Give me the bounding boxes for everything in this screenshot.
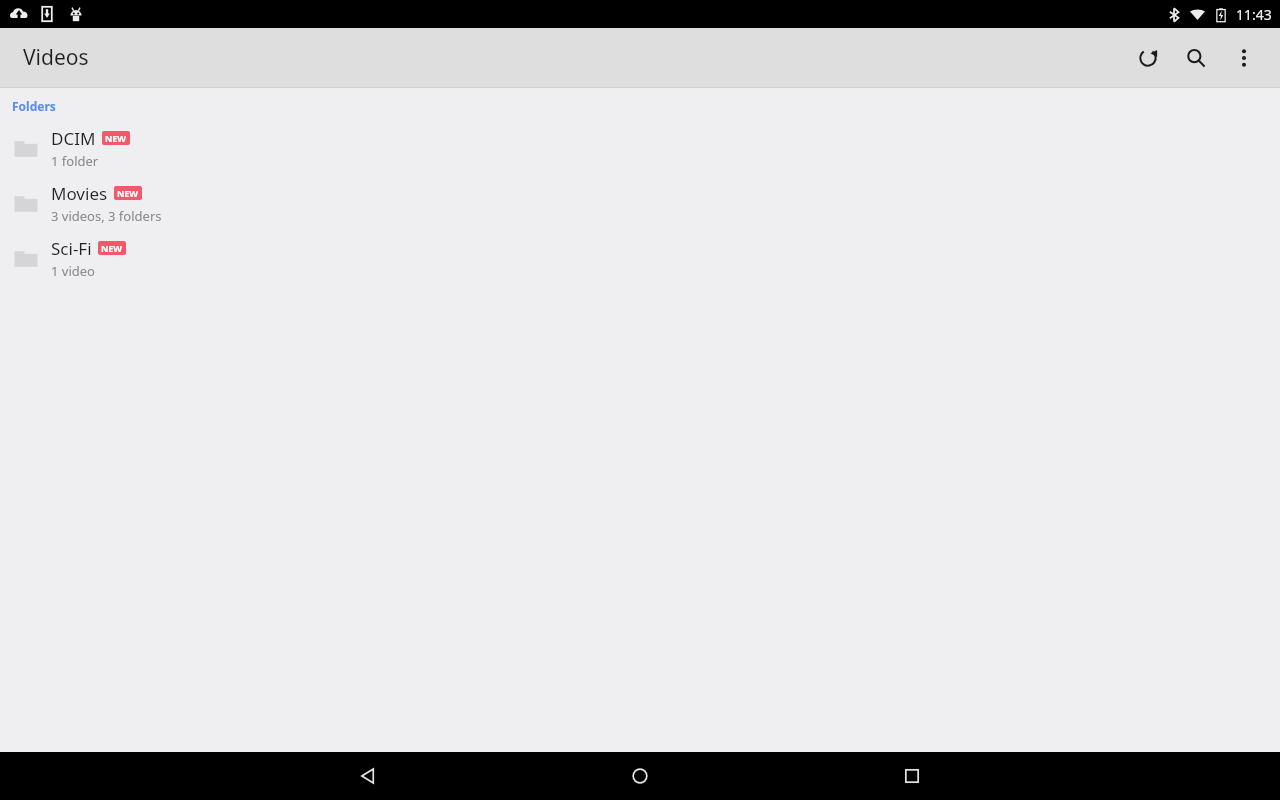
button[interactable]: Sci-Fi (0, 231, 1280, 286)
button[interactable]: DCIM (0, 121, 1280, 176)
button[interactable]: More options (1220, 34, 1268, 82)
staticText: 1 folder (51, 152, 99, 170)
button[interactable]: Recent apps (880, 752, 944, 800)
button[interactable]: Movies (0, 176, 1280, 231)
staticText: NEW (105, 132, 127, 144)
button[interactable]: Back (336, 752, 400, 800)
staticText: NEW (117, 187, 139, 199)
staticText: Videos (23, 43, 89, 72)
staticText: Sci-Fi (51, 237, 92, 260)
staticText: Movies (51, 182, 108, 205)
staticText: Folders (12, 98, 56, 114)
button[interactable]: Refresh (1124, 34, 1172, 82)
button[interactable]: Home (608, 752, 672, 800)
staticText: DCIM (51, 127, 96, 150)
staticText: NEW (101, 242, 123, 254)
staticText: 11:43 (1236, 5, 1272, 24)
button[interactable]: Search (1172, 34, 1220, 82)
staticText: 3 videos, 3 folders (51, 207, 162, 225)
staticText: 1 video (51, 262, 95, 280)
